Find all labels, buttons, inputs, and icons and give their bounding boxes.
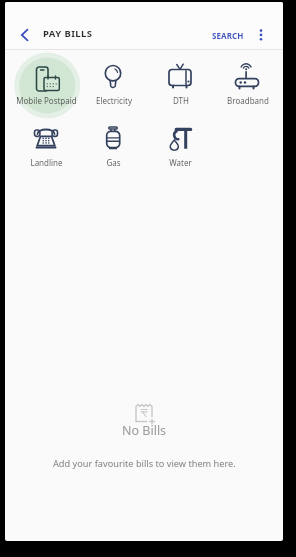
button[interactable]: DTH: [147, 53, 214, 115]
button[interactable]: Gas: [80, 115, 147, 177]
staticText: SEARCH: [212, 30, 244, 41]
staticText: No Bills: [122, 422, 167, 439]
button[interactable]: Mobile Postpaid: [13, 53, 80, 115]
button[interactable]: Electricity: [80, 53, 147, 115]
staticText: Water: [169, 157, 192, 168]
button[interactable]: SEARCH: [212, 21, 244, 49]
staticText: Gas: [106, 157, 121, 168]
staticText: Electricity: [96, 95, 132, 106]
button[interactable]: Broadband: [214, 53, 281, 115]
staticText: Mobile Postpaid: [16, 95, 77, 106]
staticText: PAY BILLS: [43, 27, 93, 40]
button[interactable]: Landline: [13, 115, 80, 177]
staticText: Landline: [30, 157, 63, 168]
staticText: Add your favourite bills to view them he…: [53, 457, 236, 470]
button[interactable]: [5, 21, 43, 49]
staticText: DTH: [173, 95, 189, 106]
staticText: Broadband: [227, 95, 269, 106]
button[interactable]: Water: [147, 115, 214, 177]
button[interactable]: [244, 21, 278, 49]
